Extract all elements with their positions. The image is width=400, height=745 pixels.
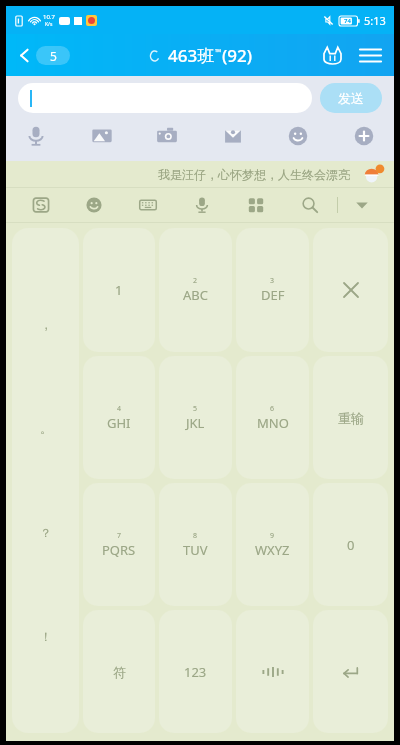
button[interactable]: Camera: [151, 120, 183, 152]
staticText: ！: [40, 629, 52, 644]
button[interactable]: 2: [159, 228, 232, 352]
staticText: ，: [40, 317, 52, 332]
staticText: 1: [115, 281, 123, 299]
button[interactable]: Enter: [313, 610, 388, 733]
staticText: 。: [40, 421, 52, 436]
button[interactable]: 9: [236, 483, 309, 606]
button[interactable]: Gift: [217, 120, 249, 152]
staticText: 74: [344, 17, 351, 25]
staticText: ？: [40, 525, 52, 540]
button[interactable]: Back, 5 unread: [14, 42, 72, 69]
button[interactable]: 5: [159, 356, 232, 479]
staticText: 符: [113, 664, 126, 680]
button[interactable]: Assistant: [362, 163, 384, 185]
staticText: 5: [50, 48, 57, 64]
button[interactable]: Gallery: [86, 120, 118, 152]
staticText: 0: [347, 536, 355, 554]
button[interactable]: 0: [313, 483, 388, 606]
button[interactable]: 重输: [313, 356, 388, 479]
button[interactable]: Voice message: [20, 120, 52, 152]
staticText: 4: [117, 404, 122, 414]
button[interactable]: 发送: [320, 83, 382, 113]
button[interactable]: Group: [316, 39, 348, 71]
staticText: 重输: [338, 410, 364, 426]
button[interactable]: Hide keyboard: [338, 188, 386, 222]
button[interactable]: Menu: [354, 39, 386, 71]
staticText: TUV: [183, 541, 208, 559]
staticText: 123: [184, 663, 207, 681]
button[interactable]: Search: [283, 188, 337, 222]
staticText: PQRS: [102, 541, 136, 559]
staticText: 7: [117, 531, 122, 541]
button[interactable]: Sogou input: [14, 188, 67, 222]
staticText: ™: [215, 46, 222, 57]
button[interactable]: Emoji: [282, 120, 314, 152]
staticText: (92): [222, 44, 253, 67]
staticText: 9: [270, 531, 275, 541]
staticText: 8: [193, 531, 198, 541]
staticText: 发送: [338, 90, 364, 106]
button[interactable]: Apps: [229, 188, 283, 222]
button[interactable]: 3: [236, 228, 309, 352]
button[interactable]: Emoji: [67, 188, 121, 222]
button[interactable]: 符: [83, 610, 155, 733]
button[interactable]: More: [348, 120, 380, 152]
staticText: 6: [270, 404, 275, 414]
staticText: MNO: [257, 414, 289, 432]
staticText: 463班: [168, 44, 215, 67]
button[interactable]: 4: [83, 356, 155, 479]
staticText: 我是汪仔，心怀梦想，人生终会漂亮: [158, 167, 350, 182]
staticText: K/s: [45, 21, 53, 28]
button[interactable]: 123: [159, 610, 232, 733]
staticText: DEF: [261, 286, 285, 304]
staticText: WXYZ: [255, 541, 290, 559]
button[interactable]: Space: [236, 610, 309, 733]
button[interactable]: Message input: [18, 83, 312, 113]
staticText: 5: [193, 404, 198, 414]
staticText: GHI: [107, 414, 131, 432]
staticText: JKL: [186, 414, 205, 432]
button[interactable]: 6: [236, 356, 309, 479]
button[interactable]: Delete: [313, 228, 388, 352]
staticText: 3: [270, 276, 275, 286]
staticText: 2: [193, 276, 198, 286]
button[interactable]: 7: [83, 483, 155, 606]
button[interactable]: 1: [83, 228, 155, 352]
button[interactable]: Keyboard layout: [121, 188, 175, 222]
button[interactable]: Voice input: [175, 188, 229, 222]
button[interactable]: 8: [159, 483, 232, 606]
staticText: ABC: [183, 286, 208, 304]
staticText: 10.7: [43, 13, 55, 21]
staticText: 5:13: [364, 13, 386, 28]
